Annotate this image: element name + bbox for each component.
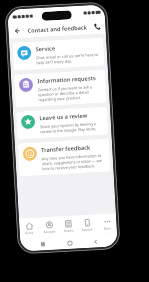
staticText: Home [25, 231, 34, 235]
button[interactable]: Account [39, 216, 59, 237]
staticText: Contact us if you want to ask a question… [38, 84, 102, 102]
staticText: Share your opinion by leaving a review i… [40, 121, 104, 134]
button[interactable]: Recents [37, 239, 48, 249]
button[interactable]: More [97, 213, 117, 234]
button[interactable]: Devices [77, 214, 97, 235]
button[interactable]: Information requests [14, 69, 107, 107]
staticText: Account [44, 229, 56, 234]
staticText: More [104, 226, 112, 231]
button[interactable]: Transfer feedback [18, 138, 110, 176]
staticText: Devices [82, 227, 93, 232]
button[interactable]: Back [90, 236, 101, 247]
staticText: Chat, email or call us; we're here to he… [36, 52, 100, 65]
staticText: Leave us a review [39, 112, 88, 122]
staticText: Information requests [37, 74, 96, 85]
button[interactable]: Service [12, 38, 105, 71]
staticText: Any time you have information to share, … [41, 153, 106, 171]
button[interactable]: Home [64, 237, 75, 248]
staticText: Service [35, 44, 56, 53]
staticText: Contact and feedback [27, 23, 88, 35]
button[interactable]: Home [19, 217, 39, 238]
button[interactable]: Leave us a review [16, 106, 108, 139]
staticText: Orders [64, 228, 74, 233]
button[interactable]: Call [91, 21, 103, 32]
button[interactable]: Orders [58, 215, 78, 236]
button[interactable]: Back [11, 25, 23, 37]
staticText: Transfer feedback [41, 143, 91, 154]
